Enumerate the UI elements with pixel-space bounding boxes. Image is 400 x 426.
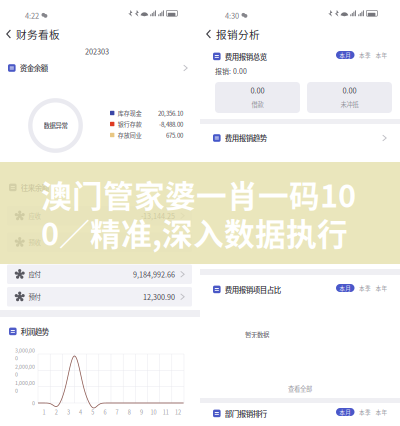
button[interactable]: 本月 — [336, 284, 354, 292]
button[interactable]: 查看全部 — [270, 383, 330, 394]
button[interactable]: 应收 — [7, 206, 192, 225]
staticText: 银行存款 — [118, 120, 142, 128]
staticText: 预付 — [28, 292, 40, 301]
staticText: 本季 — [359, 284, 371, 292]
staticText: 澳门管家婆一肖一码10 — [41, 172, 356, 216]
staticText: 暂无数据 — [245, 330, 269, 339]
staticText: 20,356.10 — [158, 109, 183, 117]
staticText: 资金余额 — [20, 63, 48, 73]
staticText: 4:30 — [225, 10, 239, 21]
staticText: 本年 — [375, 51, 387, 59]
button[interactable]: 报销分析 — [206, 26, 296, 42]
button[interactable]: 本季 — [359, 284, 371, 292]
staticText: 本年 — [375, 408, 387, 416]
button[interactable]: 资金余额 — [8, 61, 188, 75]
staticText: 应付 — [28, 270, 40, 279]
button[interactable]: 费用报销趋势 — [213, 131, 387, 145]
staticText: 12,300.90 — [143, 291, 175, 302]
staticText: 报销: 0.00 — [215, 66, 247, 76]
staticText: 本月 — [339, 408, 351, 416]
staticText: 1,000,000 — [15, 379, 35, 394]
staticText: 财务看板 — [16, 26, 60, 42]
staticText: 4 — [79, 408, 82, 416]
staticText: 3 — [67, 408, 70, 416]
staticText: 本月 — [339, 284, 351, 292]
staticText: 202303 — [85, 46, 109, 57]
staticText: 费用报销总览 — [225, 51, 267, 62]
staticText: -13,144.25 — [141, 210, 175, 221]
staticText: 查看全部 — [288, 384, 312, 393]
staticText: 0.00 — [342, 85, 356, 96]
staticText: 库存现金 — [118, 109, 142, 117]
staticText: 3,000,000 — [15, 346, 35, 362]
staticText: 0.00 — [250, 85, 264, 96]
button[interactable]: 财务看板 — [6, 26, 96, 42]
staticText: 6 — [103, 408, 106, 416]
staticText: 11 — [163, 408, 169, 416]
staticText: 费用报销趋势 — [225, 133, 267, 143]
button[interactable]: 本季 — [359, 51, 371, 59]
staticText: 报销分析 — [216, 26, 260, 42]
staticText: 借款 — [251, 100, 263, 109]
staticText: 本月 — [339, 51, 351, 59]
staticText: 8 — [128, 408, 131, 416]
staticText: 0／精准,深入数据执行 — [41, 210, 348, 254]
staticText: 未冲抵 — [340, 100, 358, 109]
staticText: 费用报销项目占比 — [225, 284, 281, 295]
staticText: 部门报销排行 — [225, 408, 267, 419]
button[interactable]: 本年 — [375, 408, 387, 416]
staticText: 4:22 — [25, 10, 39, 21]
staticText: 利润趋势 — [21, 326, 49, 337]
staticText: 存放同业 — [118, 131, 142, 139]
staticText: 本年 — [375, 284, 387, 292]
button[interactable]: 本年 — [375, 51, 387, 59]
staticText: 往来余额 — [21, 182, 49, 193]
staticText: 本季 — [359, 51, 371, 59]
button[interactable]: 本季 — [359, 408, 371, 416]
staticText: 2 — [55, 408, 58, 416]
staticText: 10 — [151, 408, 157, 416]
staticText: 9,184,992.66 — [133, 269, 175, 279]
staticText: 9 — [140, 408, 143, 416]
staticText: 预收 — [28, 238, 40, 247]
staticText: 数据异常 — [43, 121, 67, 130]
staticText: 本季 — [359, 408, 371, 416]
staticText: 12 — [175, 408, 181, 416]
button[interactable]: 应付 — [7, 264, 192, 284]
button[interactable]: 本月 — [336, 408, 354, 416]
staticText: 675.00 — [166, 131, 183, 139]
button[interactable]: 本年 — [375, 284, 387, 292]
staticText: 5 — [91, 408, 94, 416]
staticText: 2,000,000 — [15, 363, 35, 378]
staticText: 应收 — [28, 211, 40, 220]
staticText: -8,488.00 — [159, 120, 183, 128]
staticText: 1 — [43, 408, 46, 416]
button[interactable]: 预付 — [7, 287, 192, 306]
button[interactable]: 本月 — [336, 51, 354, 59]
staticText: 7 — [116, 408, 119, 416]
button[interactable]: 预收 — [7, 232, 192, 252]
staticText: 0 — [32, 399, 35, 407]
